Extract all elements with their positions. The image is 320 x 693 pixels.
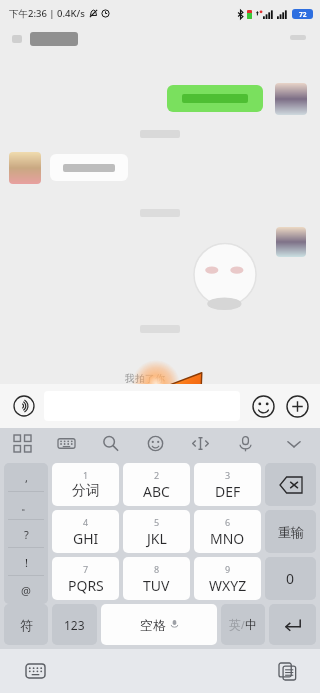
- staticText: 。: [21, 499, 32, 513]
- staticText: ,: [25, 470, 28, 485]
- staticText: 5: [154, 516, 160, 528]
- button[interactable]: 123: [52, 604, 97, 645]
- button[interactable]: Voice: [223, 428, 268, 459]
- button[interactable]: Switch keyboard: [22, 658, 48, 684]
- staticText: TUV: [143, 576, 170, 595]
- button[interactable]: Apps: [0, 428, 44, 459]
- staticText: 2: [154, 469, 160, 481]
- button[interactable]: 空格: [101, 604, 217, 645]
- staticText: 4: [83, 516, 89, 528]
- button[interactable]: Search: [88, 428, 133, 459]
- staticText: 中: [245, 617, 257, 632]
- staticText: 3: [225, 469, 231, 481]
- staticText: 7: [83, 563, 89, 575]
- staticText: 空格: [140, 617, 166, 633]
- button[interactable]: 4: [52, 510, 119, 553]
- staticText: JKL: [147, 529, 167, 548]
- button[interactable]: 8: [123, 557, 190, 600]
- button[interactable]: 2: [123, 463, 190, 506]
- button[interactable]: !: [4, 548, 48, 576]
- button[interactable]: 0: [265, 557, 316, 600]
- staticText: 分词: [72, 482, 100, 500]
- staticText: 8: [154, 563, 160, 575]
- button[interactable]: More: [282, 391, 312, 421]
- button[interactable]: Clipboard: [274, 658, 300, 684]
- staticText: !: [25, 555, 28, 570]
- staticText: 英: [229, 617, 241, 632]
- button[interactable]: Keyboard: [44, 428, 88, 459]
- staticText: ?: [24, 527, 29, 542]
- button[interactable]: 英: [221, 604, 265, 645]
- button[interactable]: ,: [4, 463, 48, 492]
- button[interactable]: @: [4, 576, 48, 604]
- button[interactable]: 。: [4, 492, 48, 520]
- staticText: 6: [225, 516, 231, 528]
- staticText: 下午2:36 | 0.4K/s: [9, 7, 85, 20]
- staticText: ABC: [143, 482, 170, 501]
- staticText: PQRS: [68, 576, 104, 595]
- staticText: 72: [299, 10, 307, 19]
- button[interactable]: 9: [194, 557, 261, 600]
- button[interactable]: 重输: [265, 510, 316, 553]
- staticText: DEF: [215, 482, 241, 501]
- staticText: 重输: [278, 524, 304, 540]
- staticText: 1: [83, 469, 89, 481]
- button[interactable]: 符: [4, 604, 48, 645]
- button[interactable]: 7: [52, 557, 119, 600]
- button[interactable]: Emoji: [248, 391, 278, 421]
- staticText: WXYZ: [209, 576, 247, 595]
- button[interactable]: Collapse keyboard: [268, 428, 320, 459]
- button[interactable]: Stickers: [133, 428, 178, 459]
- staticText: @: [21, 583, 31, 598]
- staticText: GHI: [73, 529, 99, 548]
- staticText: 0: [286, 569, 295, 588]
- button[interactable]: 1: [52, 463, 119, 506]
- staticText: /: [241, 618, 245, 632]
- staticText: 9: [225, 563, 231, 575]
- button[interactable]: Voice input: [8, 390, 40, 422]
- button[interactable]: Backspace: [265, 463, 316, 506]
- button[interactable]: ?: [4, 520, 48, 548]
- button[interactable]: 3: [194, 463, 261, 506]
- staticText: 123: [64, 617, 85, 633]
- staticText: 符: [20, 617, 33, 633]
- button[interactable]: Cursor: [178, 428, 223, 459]
- staticText: 我拍了你: [125, 372, 165, 385]
- button[interactable]: 6: [194, 510, 261, 553]
- button[interactable]: Enter: [269, 604, 316, 645]
- button[interactable]: 5: [123, 510, 190, 553]
- staticText: MNO: [210, 529, 245, 548]
